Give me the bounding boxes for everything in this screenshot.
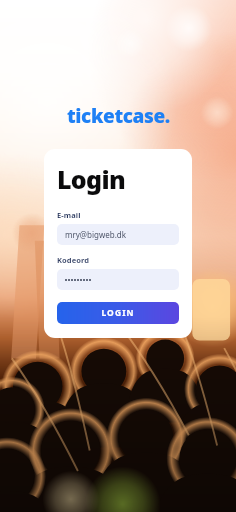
button[interactable]: mry@bigweb.dk (57, 224, 179, 245)
staticText: Kodeord (57, 255, 90, 265)
button[interactable] (57, 269, 179, 290)
staticText: mry@bigweb.dk (65, 229, 127, 240)
button[interactable]: LOGIN (57, 302, 179, 324)
staticText: Login (57, 162, 125, 196)
staticText: ticketcase. (67, 103, 170, 129)
staticText: E-mail (57, 210, 81, 220)
staticText: LOGIN (101, 307, 135, 319)
